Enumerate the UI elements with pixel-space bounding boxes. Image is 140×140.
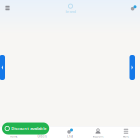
button[interactable]: Open right panel: [129, 55, 135, 80]
button[interactable]: Account: [128, 2, 138, 13]
button[interactable]: Chat: [56, 126, 84, 140]
staticText: Discount available: [11, 126, 46, 131]
button[interactable]: Orders: [28, 126, 56, 140]
staticText: Orders: [37, 135, 46, 138]
button[interactable]: Open left panel: [0, 55, 5, 80]
button[interactable]: Home: [0, 126, 28, 140]
staticText: More: [122, 135, 129, 138]
staticText: Account: [92, 135, 103, 138]
button[interactable]: More: [112, 126, 140, 140]
staticText: Home: [10, 135, 18, 138]
button[interactable]: Menu: [2, 2, 12, 13]
staticText: Chat: [67, 135, 73, 138]
button[interactable]: Account: [84, 126, 112, 140]
button[interactable]: Discount available: [2, 122, 49, 134]
staticText: brand: [65, 9, 75, 14]
